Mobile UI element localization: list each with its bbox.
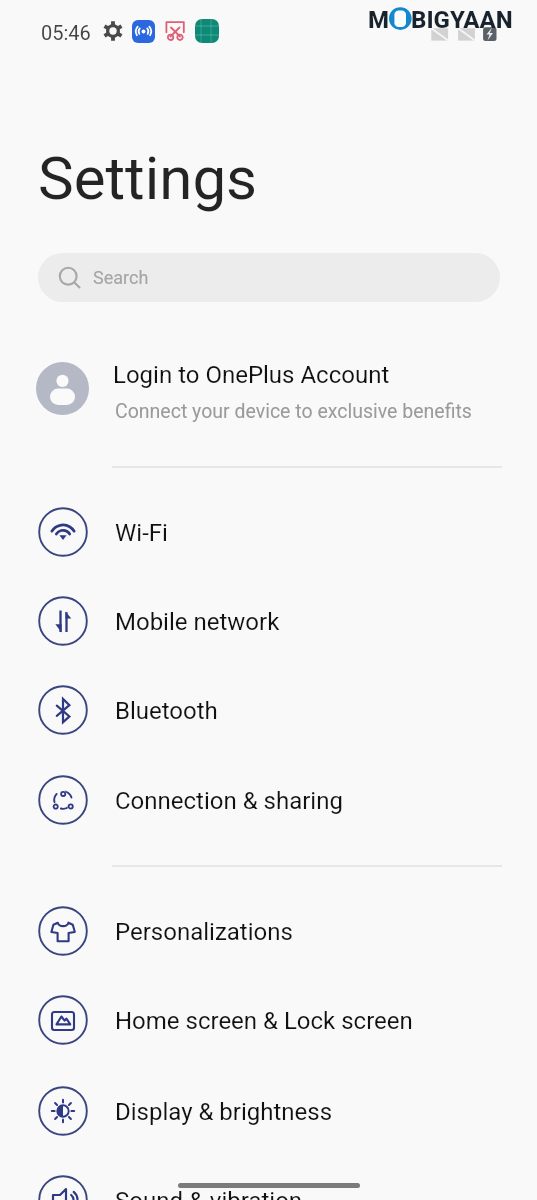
staticText: Sound & vibration	[115, 1187, 303, 1200]
button[interactable]: Search	[38, 253, 500, 302]
staticText: M	[368, 6, 390, 34]
button[interactable]: Bluetooth	[0, 665, 537, 754]
button[interactable]: Mobile network	[0, 576, 537, 665]
staticText: Home screen & Lock screen	[115, 1007, 413, 1035]
staticText: Connect your device to exclusive benefit…	[115, 400, 472, 423]
staticText: 05:46	[41, 21, 91, 44]
button[interactable]: Personalizations	[0, 886, 537, 975]
button[interactable]: Home screen & Lock screen	[0, 975, 537, 1064]
staticText: Display & brightness	[115, 1098, 333, 1126]
button[interactable]: Wi-Fi	[0, 487, 537, 576]
staticText: Mobile network	[115, 608, 280, 636]
button[interactable]: Display & brightness	[0, 1066, 537, 1155]
staticText: Search	[93, 267, 149, 288]
staticText: Connection & sharing	[115, 787, 343, 815]
button[interactable]: Login to OnePlus Account	[0, 343, 537, 435]
staticText: Settings	[38, 143, 258, 213]
staticText: BIGYAAN	[411, 6, 513, 34]
staticText: Bluetooth	[115, 697, 218, 725]
staticText: Personalizations	[115, 918, 293, 946]
button[interactable]: Sound & vibration	[0, 1155, 537, 1200]
button[interactable]: Connection & sharing	[0, 755, 537, 844]
staticText: Wi-Fi	[115, 519, 168, 547]
staticText: Login to OnePlus Account	[113, 361, 390, 389]
